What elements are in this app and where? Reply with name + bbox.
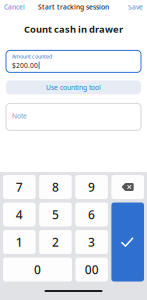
- staticText: $200.00: [12, 61, 38, 70]
- staticText: 4: [16, 206, 23, 222]
- staticText: Start tracking session: [38, 3, 109, 11]
- staticText: 8: [52, 179, 59, 195]
- button[interactable]: 6: [75, 202, 108, 226]
- staticText: 6: [88, 206, 95, 222]
- staticText: Count cash in drawer: [24, 23, 123, 35]
- staticText: 9: [88, 179, 95, 195]
- button[interactable]: 3: [75, 230, 108, 254]
- button[interactable]: Save: [124, 0, 147, 14]
- button[interactable]: 5: [39, 202, 72, 226]
- button[interactable]: 0: [3, 257, 72, 281]
- staticText: 1: [16, 234, 23, 250]
- staticText: Note: [12, 111, 27, 120]
- staticText: 3: [88, 234, 95, 250]
- staticText: 0: [34, 261, 41, 277]
- staticText: 5: [52, 206, 59, 222]
- button[interactable]: 1: [3, 230, 36, 254]
- button[interactable]: 8: [39, 175, 72, 199]
- staticText: Cancel: [4, 3, 25, 11]
- staticText: Amount counted: [12, 53, 52, 60]
- staticText: Use counting tool: [46, 83, 101, 92]
- button[interactable]: Cancel: [0, 0, 29, 14]
- button[interactable]: Confirm: [111, 202, 144, 281]
- button[interactable]: Use counting tool: [6, 80, 141, 94]
- staticText: 00: [85, 261, 99, 277]
- staticText: 2: [52, 234, 59, 250]
- staticText: Save: [128, 3, 143, 11]
- button[interactable]: 2: [39, 230, 72, 254]
- button[interactable]: 7: [3, 175, 36, 199]
- button[interactable]: 4: [3, 202, 36, 226]
- button[interactable]: 9: [75, 175, 108, 199]
- button[interactable]: Delete: [111, 175, 144, 199]
- button[interactable]: 00: [75, 257, 108, 281]
- staticText: 7: [16, 179, 23, 195]
